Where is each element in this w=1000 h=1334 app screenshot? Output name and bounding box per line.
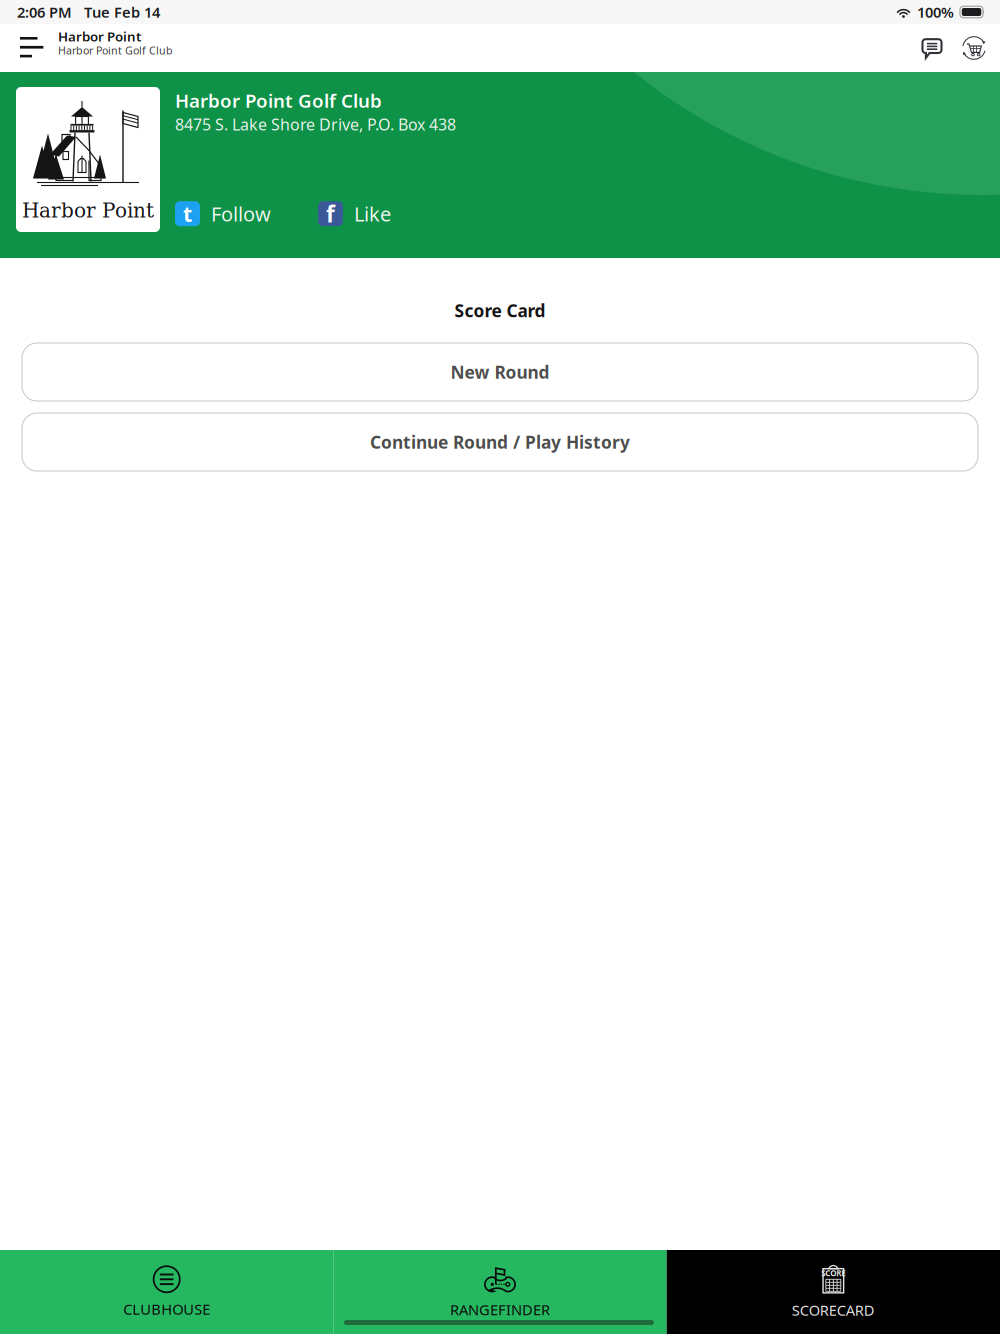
staticText: Like: [354, 200, 391, 227]
staticText: f: [326, 199, 335, 229]
staticText: RANGEFINDER: [450, 1300, 550, 1319]
staticText: Continue Round / Play History: [370, 430, 630, 453]
button[interactable]: New Round: [22, 343, 978, 401]
button[interactable]: SCORE: [667, 1250, 1000, 1334]
staticText: 2:06 PM: [17, 2, 72, 22]
staticText: SCORE: [821, 1268, 845, 1278]
staticText: Harbor Point Golf Club: [175, 88, 382, 113]
button[interactable]: Menu: [8, 24, 56, 72]
button[interactable]: CLUBHOUSE: [0, 1250, 333, 1334]
button[interactable]: Pro Shop: [957, 24, 991, 72]
button[interactable]: f: [318, 200, 391, 227]
staticText: CLUBHOUSE: [123, 1299, 210, 1319]
staticText: Follow: [211, 200, 271, 227]
staticText: Harbor Point: [58, 28, 141, 45]
button[interactable]: Messages: [915, 24, 949, 72]
staticText: Score Card: [454, 299, 545, 322]
button[interactable]: Continue Round / Play History: [22, 413, 978, 471]
staticText: SCORECARD: [792, 1300, 875, 1320]
button[interactable]: t: [175, 200, 271, 227]
staticText: New Round: [450, 360, 549, 383]
staticText: t: [183, 200, 192, 228]
staticText: 8475 S. Lake Shore Drive, P.O. Box 438: [175, 114, 456, 135]
button[interactable]: RANGEFINDER: [333, 1250, 667, 1334]
staticText: 100%: [917, 2, 954, 22]
staticText: Harbor Point: [22, 199, 154, 222]
staticText: Tue Feb 14: [84, 2, 160, 22]
staticText: Harbor Point Golf Club: [58, 43, 173, 57]
